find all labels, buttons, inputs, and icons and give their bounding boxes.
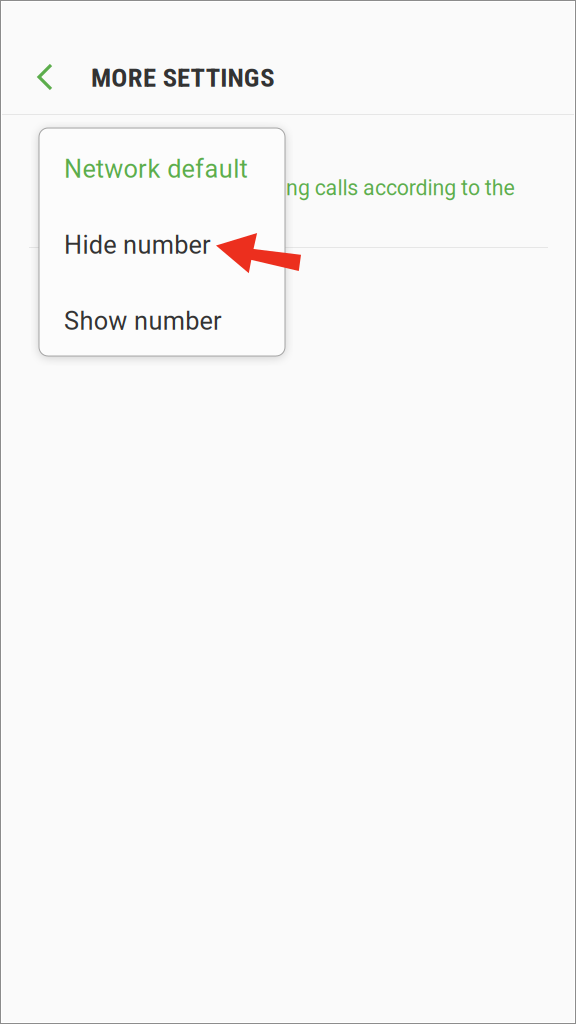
button[interactable]: ng calls according to the [286, 177, 566, 199]
staticText: Hide number [64, 230, 211, 260]
button[interactable]: Navigate up [17, 49, 73, 105]
staticText: Show number [64, 306, 222, 336]
button[interactable]: Show number [39, 280, 285, 356]
staticText: Network default [64, 154, 248, 184]
button[interactable]: Network default [39, 128, 285, 204]
staticText: MORE SETTINGS [91, 62, 274, 93]
button[interactable]: Hide number [39, 204, 285, 280]
staticText: ng calls according to the [286, 175, 515, 200]
